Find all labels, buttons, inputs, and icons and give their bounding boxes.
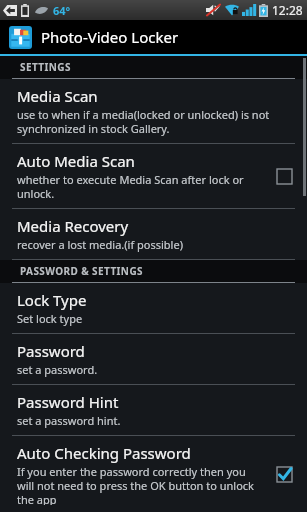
staticText: Set lock type — [17, 311, 83, 326]
button[interactable]: Auto Media Scan — [0, 144, 307, 208]
button[interactable]: Lock Type — [0, 283, 307, 333]
staticText: use to when if a media(locked or unlocke… — [17, 107, 297, 136]
staticText: SETTINGS — [20, 60, 71, 74]
staticText: recover a lost media.(if possible) — [17, 237, 183, 252]
staticText: Media Recovery — [17, 216, 129, 236]
staticText: 12:28 — [272, 2, 303, 18]
staticText: 64° — [53, 3, 71, 18]
staticText: If you enter the password correctly then… — [17, 464, 263, 505]
button[interactable]: Auto Checking Password — [0, 436, 307, 512]
staticText: set a password hint. — [17, 413, 121, 428]
button[interactable]: Checked — [271, 461, 297, 487]
staticText: PASSWORD & SETTINGS — [20, 264, 143, 278]
staticText: set a password. — [17, 362, 98, 377]
button[interactable]: Password — [0, 334, 307, 384]
button[interactable]: Media Recovery — [0, 209, 307, 259]
button[interactable]: Password Hint — [0, 385, 307, 435]
staticText: Lock Type — [17, 290, 87, 310]
staticText: Auto Checking Password — [17, 443, 191, 463]
staticText: Photo-Video Locker — [41, 27, 179, 47]
staticText: Password — [17, 341, 85, 361]
staticText: Media Scan — [17, 86, 98, 106]
button[interactable]: Unchecked — [271, 163, 297, 189]
staticText: whether to execute Media Scan after lock… — [17, 172, 263, 201]
button[interactable]: Photo-Video Locker — [0, 20, 307, 54]
staticText: Password Hint — [17, 392, 119, 412]
button[interactable]: Media Scan — [0, 79, 307, 143]
staticText: Auto Media Scan — [17, 151, 135, 171]
